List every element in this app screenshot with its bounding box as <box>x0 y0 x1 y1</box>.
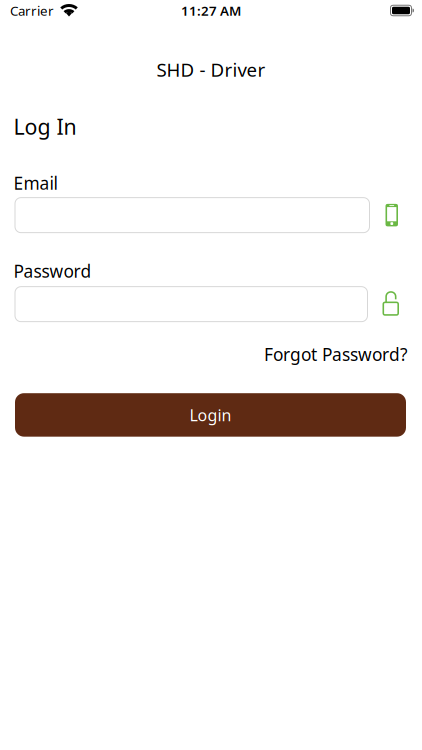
staticText: Password <box>13 260 91 283</box>
staticText: Login <box>189 404 231 425</box>
button[interactable]: Login <box>15 393 406 437</box>
button[interactable]: Forgot Password? <box>264 343 408 366</box>
button[interactable]: Email <box>15 198 369 233</box>
staticText: 11:27 AM <box>181 2 241 19</box>
button[interactable]: Password <box>15 287 367 322</box>
staticText: SHD - Driver <box>156 57 265 82</box>
staticText: Email <box>13 172 57 195</box>
staticText: Forgot Password? <box>264 343 408 366</box>
staticText: Carrier <box>10 2 54 19</box>
staticText: Log In <box>13 112 76 141</box>
